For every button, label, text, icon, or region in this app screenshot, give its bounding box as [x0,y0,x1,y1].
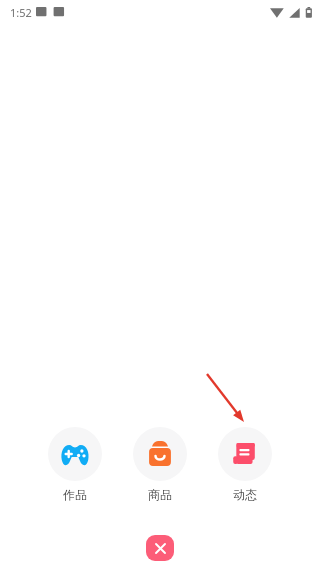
staticText: 动态 [218,487,272,502]
button[interactable]: 动态 [218,427,272,502]
staticText: 1:52 [10,5,32,20]
staticText: 作品 [48,487,102,502]
button[interactable]: 商品 [133,427,187,502]
staticText: 商品 [133,487,187,502]
button[interactable]: Close [146,535,174,561]
button[interactable]: 作品 [48,427,102,502]
